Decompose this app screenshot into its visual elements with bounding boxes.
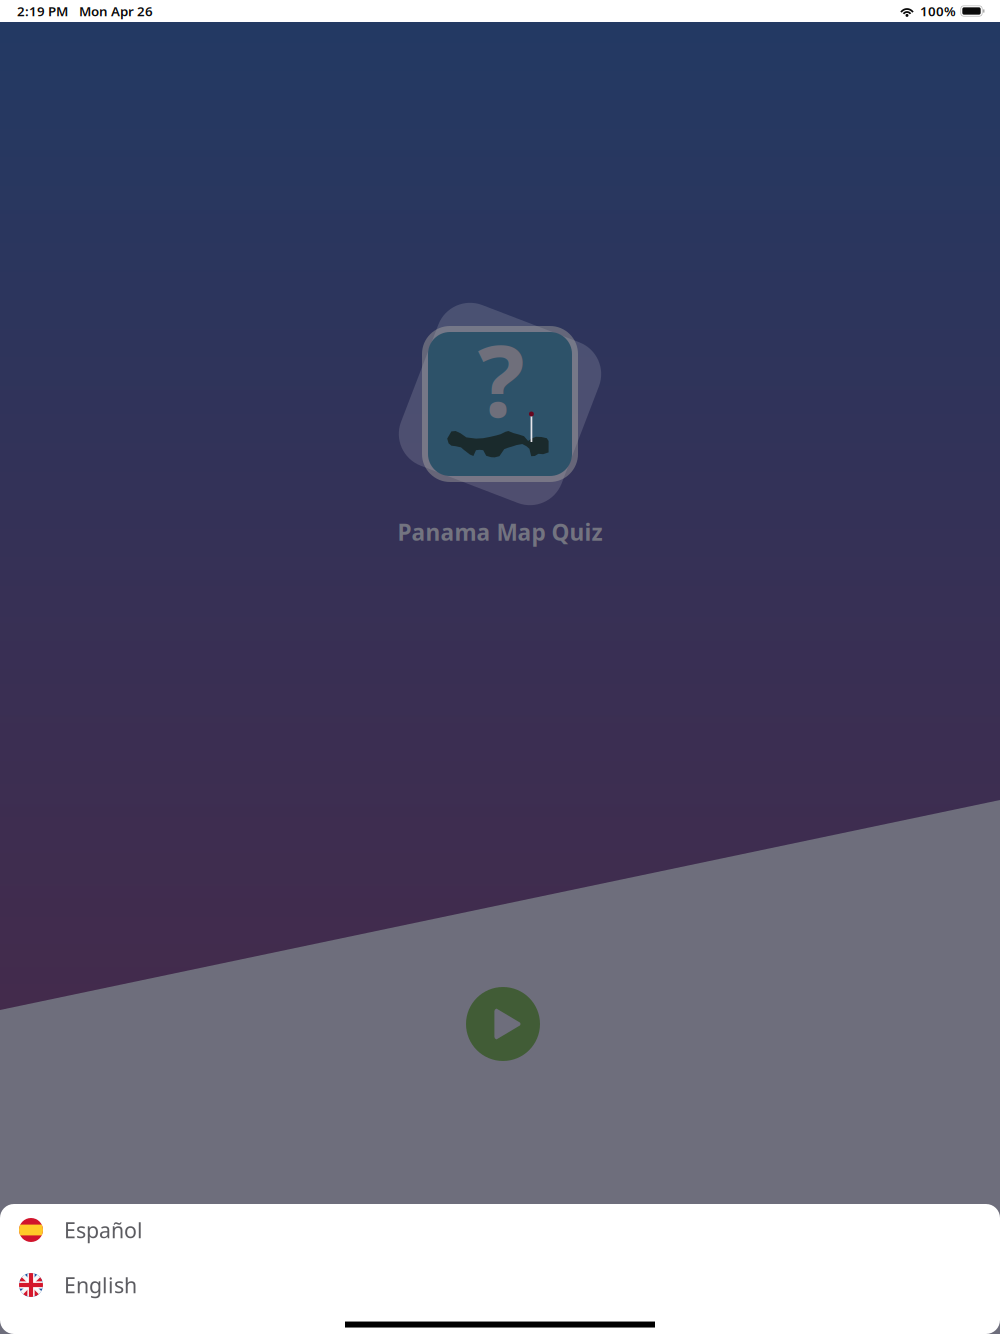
staticText: 2:19 PM: [17, 2, 68, 20]
staticText: Español: [64, 1216, 143, 1244]
staticText: 100%: [920, 2, 956, 20]
staticText: English: [64, 1271, 137, 1299]
staticText: Mon Apr 26: [79, 2, 153, 20]
staticText: Panama Map Quiz: [397, 517, 602, 547]
staticText: ?: [477, 313, 524, 444]
button[interactable]: English: [0, 1257, 1000, 1312]
button[interactable]: Español: [0, 1202, 1000, 1257]
button[interactable]: Play: [466, 987, 540, 1061]
